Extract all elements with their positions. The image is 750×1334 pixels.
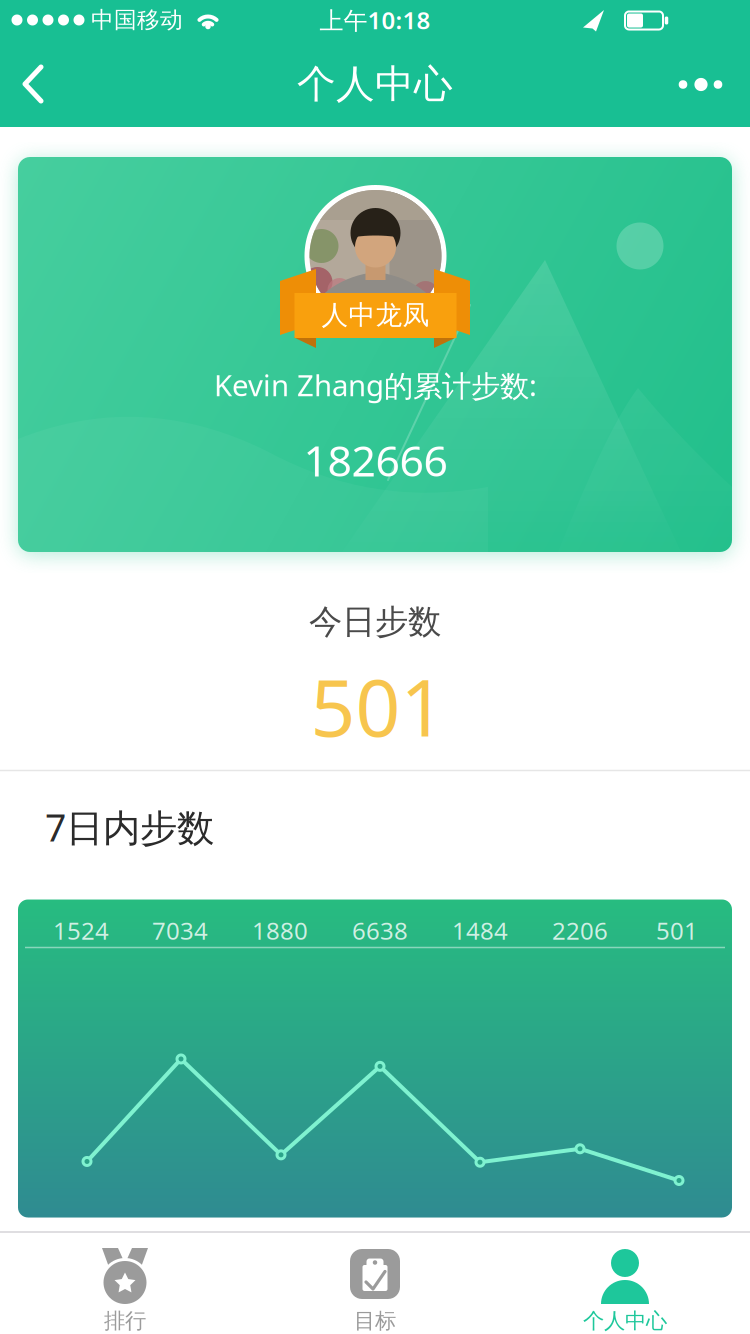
button[interactable]: 目标 <box>250 1233 500 1333</box>
staticText: 7034 <box>152 915 208 946</box>
button[interactable]: Back <box>4 49 64 119</box>
staticText: 人中龙凤 <box>321 299 429 331</box>
staticText: 501 <box>310 654 445 758</box>
staticText: 6638 <box>352 915 408 946</box>
staticText: 1880 <box>252 915 308 946</box>
staticText: 2206 <box>552 915 608 946</box>
staticText: 今日步数 <box>309 601 441 642</box>
button[interactable]: More <box>670 62 731 106</box>
staticText: 排行 <box>104 1308 146 1334</box>
staticText: 1524 <box>53 915 109 946</box>
staticText: 个人中心 <box>583 1308 667 1334</box>
staticText: 个人中心 <box>297 60 453 108</box>
staticText: Kevin Zhang的累计步数: <box>214 365 537 404</box>
button[interactable]: 个人中心 <box>500 1233 750 1333</box>
staticText: 1484 <box>452 915 508 946</box>
staticText: 目标 <box>354 1308 396 1334</box>
staticText: 501 <box>656 915 698 946</box>
staticText: 182666 <box>303 432 447 488</box>
staticText: 上午10:18 <box>319 4 430 36</box>
staticText: 中国移动 <box>91 6 183 34</box>
button[interactable]: 排行 <box>0 1233 250 1333</box>
staticText: 7日内步数 <box>45 802 214 852</box>
